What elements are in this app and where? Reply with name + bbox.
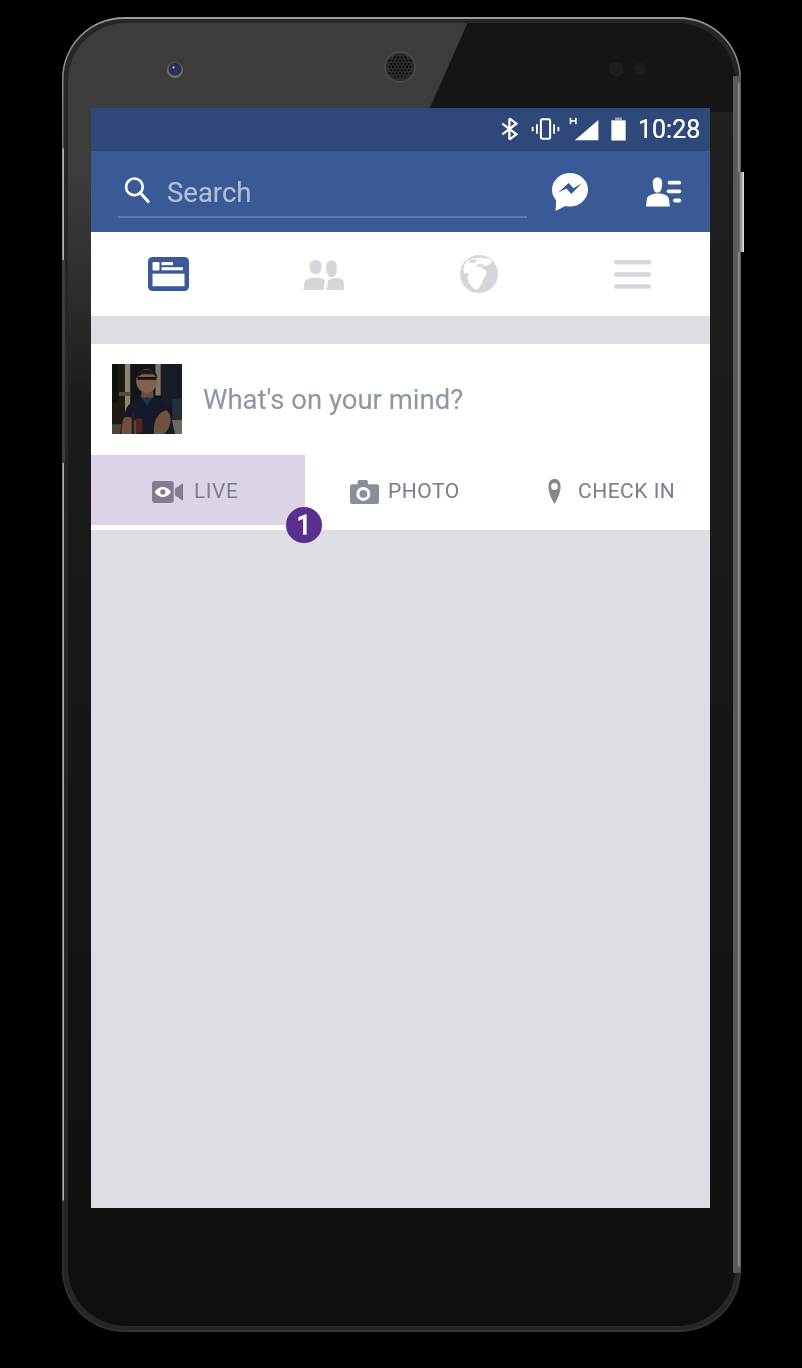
button[interactable]: Friend requests [246, 232, 401, 316]
button[interactable]: CHECK IN [502, 455, 710, 525]
button[interactable]: Search [111, 155, 536, 229]
staticText: CHECK IN [578, 479, 676, 504]
button[interactable]: LIVE [91, 455, 305, 525]
button[interactable]: PHOTO [305, 455, 502, 525]
button[interactable]: News Feed [91, 232, 246, 316]
staticText: Search [167, 176, 252, 208]
button[interactable]: More menu [556, 232, 710, 316]
button[interactable]: 1 notification [286, 507, 322, 543]
staticText: What's on your mind? [203, 383, 464, 415]
button[interactable]: Messenger [534, 155, 606, 229]
staticText: 1 [297, 511, 312, 540]
staticText: PHOTO [388, 479, 460, 504]
button[interactable]: Friend requests [628, 155, 700, 229]
button[interactable]: What's on your mind? [91, 344, 710, 454]
staticText: LIVE [194, 479, 239, 504]
button[interactable]: Globe notifications [401, 232, 556, 316]
staticText: 10:28 [638, 115, 701, 144]
